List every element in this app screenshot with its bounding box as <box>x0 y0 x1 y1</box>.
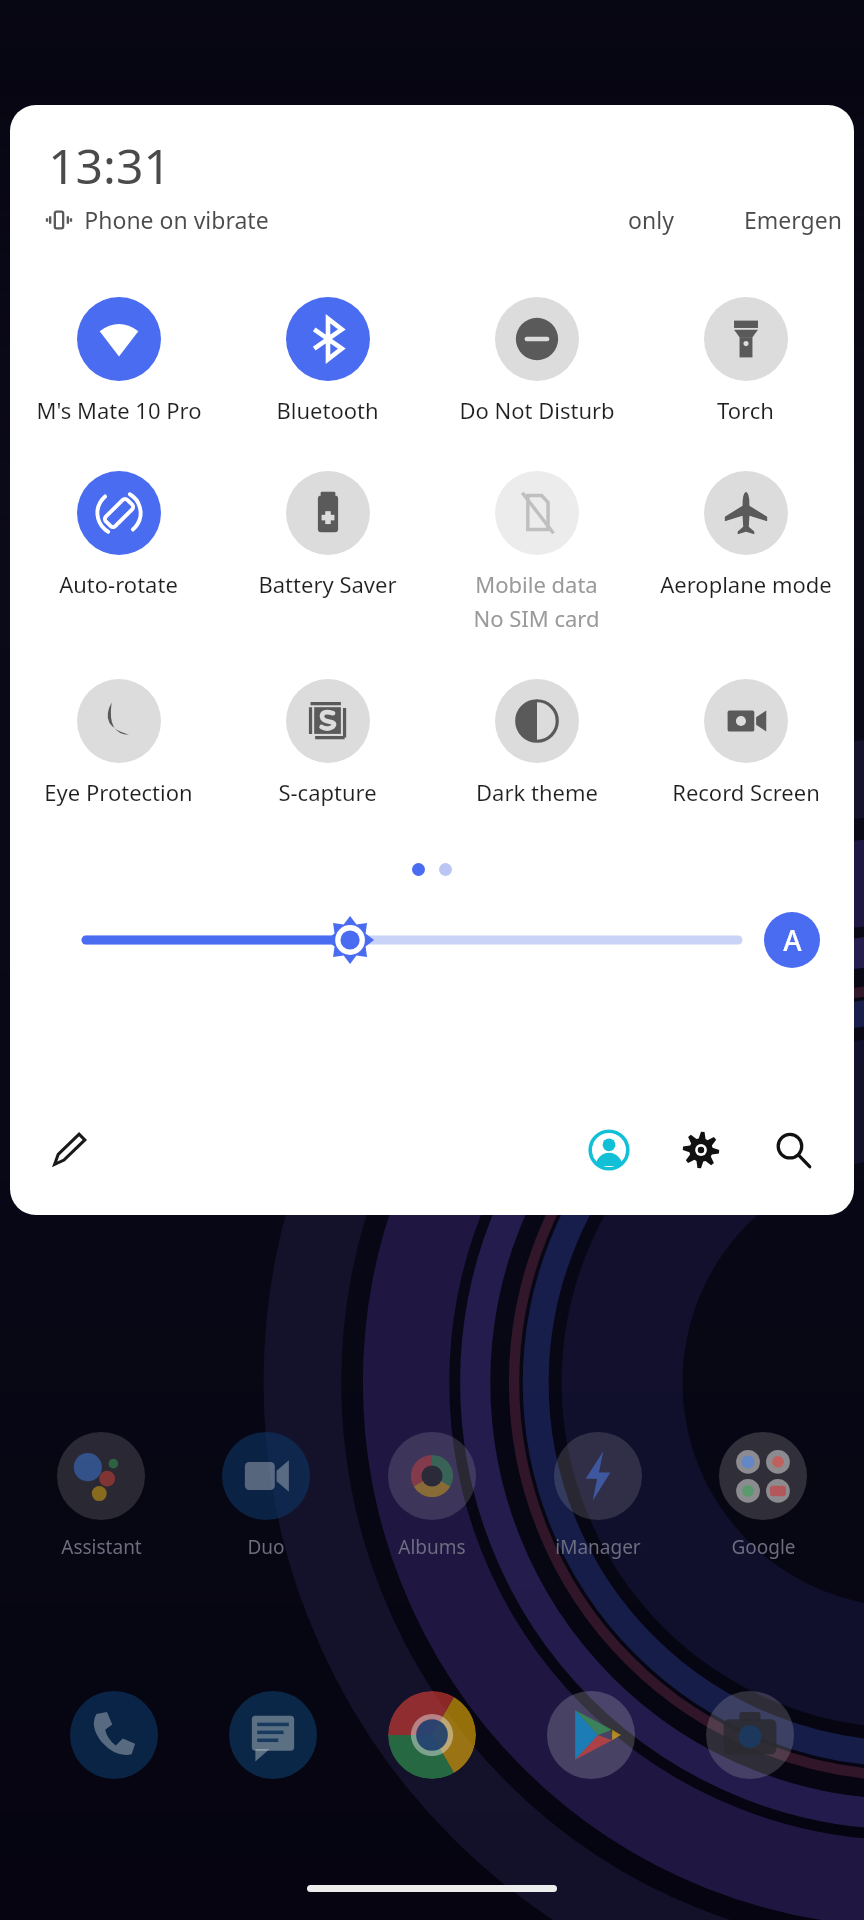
button[interactable]: Albums <box>357 1432 507 1560</box>
button[interactable]: Battery Saver <box>223 471 432 599</box>
staticText: No SIM card <box>473 603 600 633</box>
staticText: Dark theme <box>476 777 598 807</box>
button[interactable]: Google <box>688 1432 838 1560</box>
button[interactable]: Dark theme <box>432 679 641 807</box>
button[interactable]: Record Screen <box>641 679 850 807</box>
staticText: A <box>783 921 802 959</box>
button[interactable]: Eye Protection <box>14 679 223 807</box>
staticText: 13:31 <box>48 133 171 198</box>
staticText: M's Mate 10 Pro <box>36 395 202 425</box>
button[interactable]: Edit <box>38 1119 100 1181</box>
button[interactable]: Assistant <box>26 1432 176 1560</box>
button[interactable]: S-capture <box>223 679 432 807</box>
staticText: Eye Protection <box>44 777 193 807</box>
staticText: Albums <box>398 1534 466 1560</box>
staticText: iManager <box>555 1534 641 1560</box>
button[interactable]: Mobile data <box>432 471 641 633</box>
button[interactable]: App <box>695 1680 805 1790</box>
button[interactable]: Auto-rotate <box>14 471 223 599</box>
button[interactable]: Torch <box>641 297 850 425</box>
button[interactable]: Brightness <box>86 912 738 968</box>
staticText: Auto-rotate <box>59 569 178 599</box>
staticText: Mobile data <box>475 569 598 599</box>
button[interactable]: App <box>59 1680 169 1790</box>
staticText: Phone on vibrate <box>84 204 269 235</box>
staticText: only <box>628 204 674 235</box>
staticText: Do Not Disturb <box>459 395 615 425</box>
staticText: Duo <box>247 1534 285 1560</box>
button[interactable]: iManager <box>523 1432 673 1560</box>
button[interactable]: M's Mate 10 Pro <box>14 297 223 425</box>
staticText: Aeroplane mode <box>660 569 832 599</box>
button[interactable]: App <box>377 1680 487 1790</box>
button[interactable]: Search <box>762 1119 824 1181</box>
staticText: Google <box>731 1534 796 1560</box>
staticText: Emergen <box>744 204 842 235</box>
staticText: Bluetooth <box>276 395 379 425</box>
staticText: S-capture <box>278 777 377 807</box>
button[interactable]: Auto brightness <box>764 912 820 968</box>
staticText: Torch <box>717 395 774 425</box>
button[interactable]: Settings <box>670 1119 732 1181</box>
staticText: Battery Saver <box>258 569 397 599</box>
button[interactable]: App <box>218 1680 328 1790</box>
button[interactable]: Duo <box>191 1432 341 1560</box>
staticText: Record Screen <box>672 777 820 807</box>
button[interactable]: User <box>578 1119 640 1181</box>
button[interactable]: Aeroplane mode <box>641 471 850 599</box>
staticText: Assistant <box>61 1534 142 1560</box>
button[interactable]: App <box>536 1680 646 1790</box>
button[interactable]: Do Not Disturb <box>432 297 641 425</box>
button[interactable]: Bluetooth <box>223 297 432 425</box>
